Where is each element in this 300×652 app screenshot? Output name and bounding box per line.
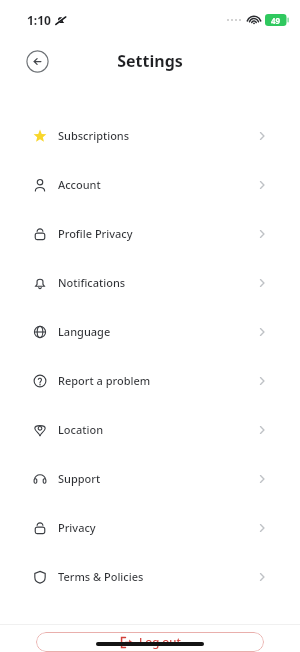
staticText: Subscriptions [58, 128, 130, 143]
button[interactable]: Terms & Policies [0, 552, 300, 601]
button[interactable]: Account [0, 160, 300, 209]
button[interactable]: Language [0, 307, 300, 356]
button[interactable]: Log out [36, 632, 264, 652]
button[interactable]: Subscriptions [0, 111, 300, 160]
button[interactable]: Privacy [0, 503, 300, 552]
staticText: Log out [139, 634, 181, 650]
staticText: 1:10 [27, 12, 51, 28]
button[interactable]: Report a problem [0, 356, 300, 405]
staticText: Terms & Policies [58, 569, 144, 584]
button[interactable]: Notifications [0, 258, 300, 307]
staticText: Profile Privacy [58, 226, 133, 241]
staticText: Notifications [58, 275, 126, 290]
staticText: Location [58, 422, 104, 437]
staticText: Language [58, 324, 111, 339]
staticText: Report a problem [58, 373, 151, 388]
staticText: Support [58, 471, 101, 486]
staticText: Settings [117, 50, 183, 72]
button[interactable]: Support [0, 454, 300, 503]
staticText: Account [58, 177, 101, 192]
button[interactable]: Back [26, 50, 49, 73]
staticText: 49 [271, 15, 281, 26]
button[interactable]: Location [0, 405, 300, 454]
button[interactable]: Profile Privacy [0, 209, 300, 258]
staticText: Privacy [58, 520, 96, 535]
